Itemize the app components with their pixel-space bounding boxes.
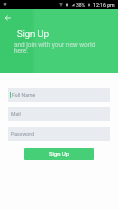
staticText: 12:16 pm xyxy=(93,2,115,8)
staticText: Mail xyxy=(11,111,21,117)
button[interactable]: Sign Up xyxy=(24,148,94,160)
button[interactable]: Back xyxy=(2,12,14,24)
button[interactable]: Full Name xyxy=(8,88,110,102)
staticText: Full Name xyxy=(12,92,36,98)
staticText: Password xyxy=(11,131,34,137)
staticText: Sign Up xyxy=(17,28,50,39)
button[interactable]: Password xyxy=(8,127,110,141)
staticText: and join with your new world here. xyxy=(14,41,96,54)
staticText: Sign Up xyxy=(49,151,70,158)
staticText: 38% xyxy=(76,2,86,8)
button[interactable]: Mail xyxy=(8,107,110,121)
